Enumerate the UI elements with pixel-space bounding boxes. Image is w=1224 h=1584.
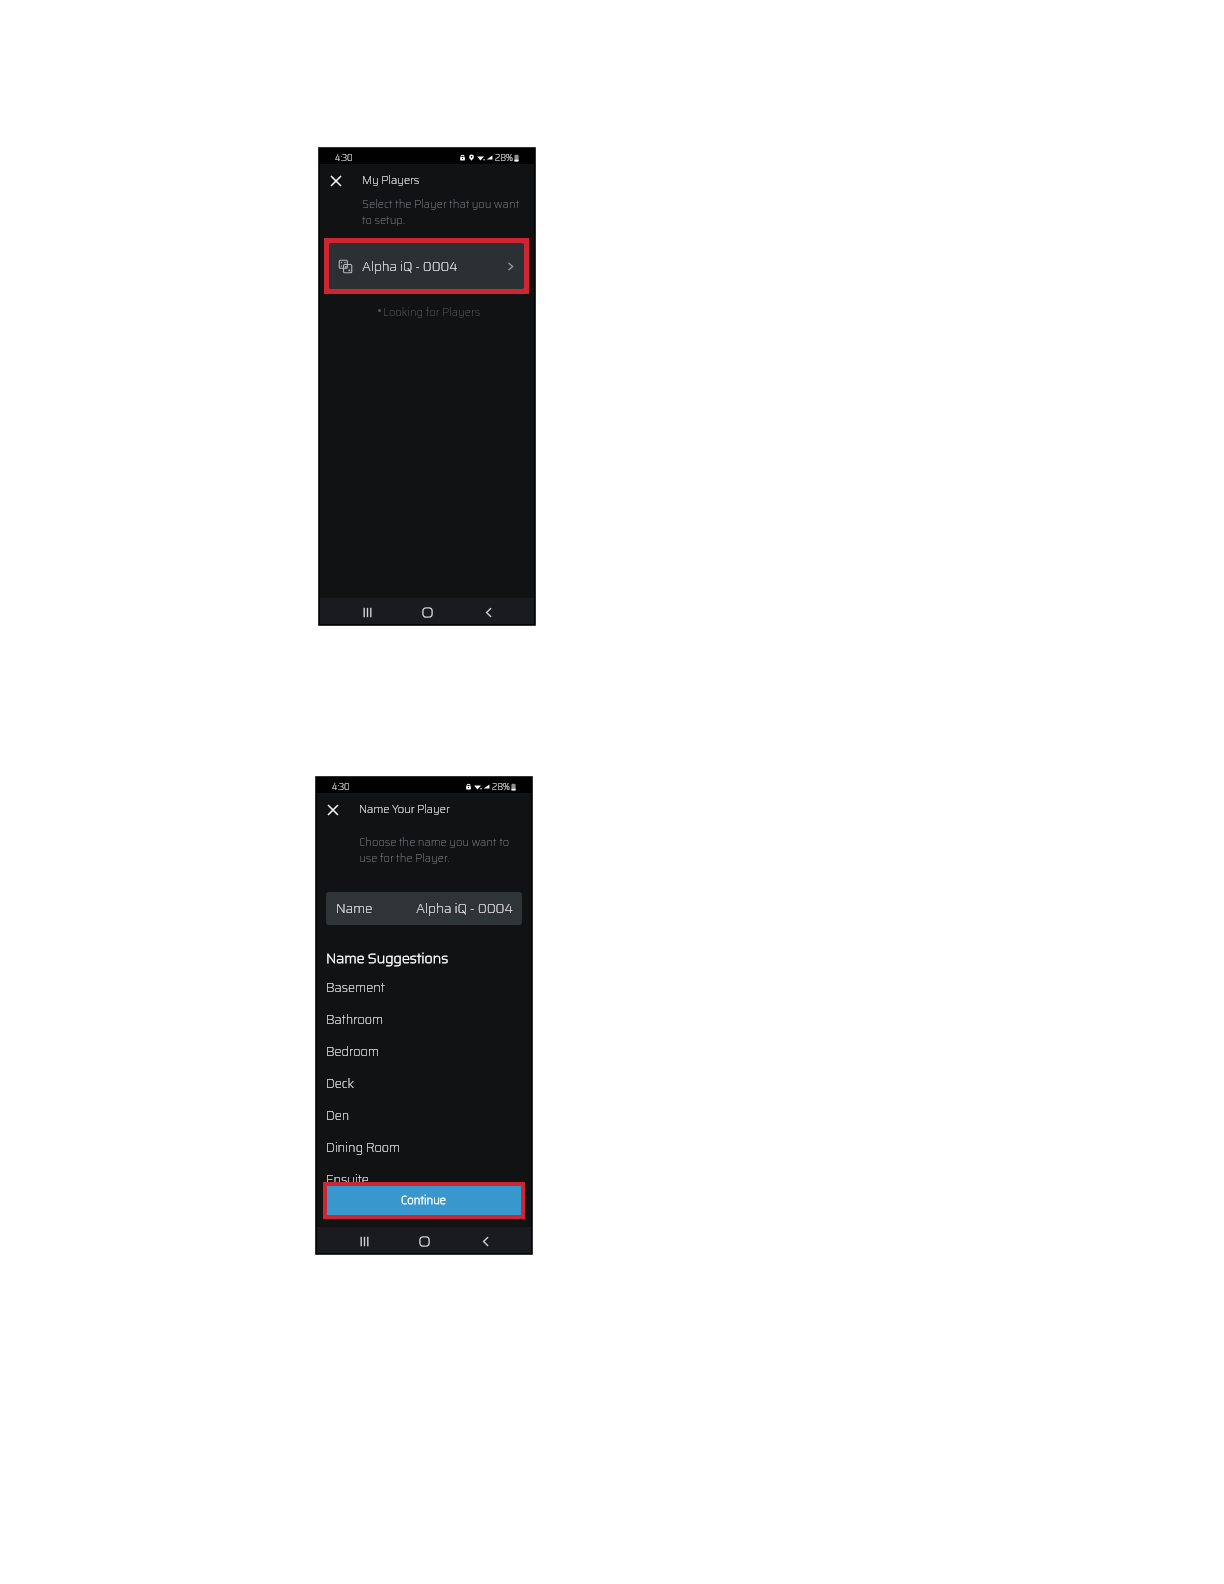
staticText: My Players (362, 172, 420, 189)
button[interactable]: Home (411, 1228, 437, 1254)
staticText: Choose the name you want to use for the … (359, 834, 519, 867)
button[interactable]: Basement (316, 972, 532, 1004)
button[interactable]: Close (323, 168, 349, 194)
button[interactable]: Den (316, 1100, 532, 1132)
staticText: 4:30 (332, 780, 350, 793)
staticText: Ensuite (326, 1170, 369, 1190)
staticText: Den (326, 1106, 350, 1126)
staticText: Alpha iQ - 0004 (416, 898, 513, 919)
button[interactable]: Recent apps (351, 1228, 377, 1254)
staticText: Alpha iQ - 0004 (362, 256, 458, 276)
staticText: Looking for Players (383, 304, 481, 321)
button[interactable]: Name (326, 892, 522, 925)
button[interactable]: Close (320, 797, 346, 823)
button[interactable]: Home (414, 599, 440, 625)
staticText: 28% (495, 151, 513, 164)
staticText: Select the Player that you want to setup… (362, 196, 530, 229)
button[interactable]: Alpha iQ - 0004 (329, 243, 524, 289)
button[interactable]: Bathroom (316, 1004, 532, 1036)
button[interactable]: Deck (316, 1068, 532, 1100)
staticText: Name Your Player (359, 801, 450, 818)
staticText: Basement (326, 978, 385, 998)
staticText: Name Suggestions (326, 947, 449, 969)
staticText: Continue (401, 1192, 447, 1209)
staticText: 4:30 (335, 151, 353, 164)
button[interactable]: Recent apps (354, 599, 380, 625)
button[interactable]: Back (475, 599, 501, 625)
staticText: 28% (492, 780, 510, 793)
button[interactable]: Dining Room (316, 1132, 532, 1164)
staticText: Bathroom (326, 1010, 384, 1030)
staticText: Name (336, 898, 373, 919)
staticText: Deck (326, 1074, 354, 1094)
button[interactable]: Ensuite (316, 1164, 532, 1196)
button[interactable]: Bedroom (316, 1036, 532, 1068)
button[interactable]: Back (472, 1228, 498, 1254)
staticText: Bedroom (326, 1042, 379, 1062)
button[interactable]: Continue (327, 1186, 521, 1215)
staticText: Dining Room (326, 1138, 401, 1158)
